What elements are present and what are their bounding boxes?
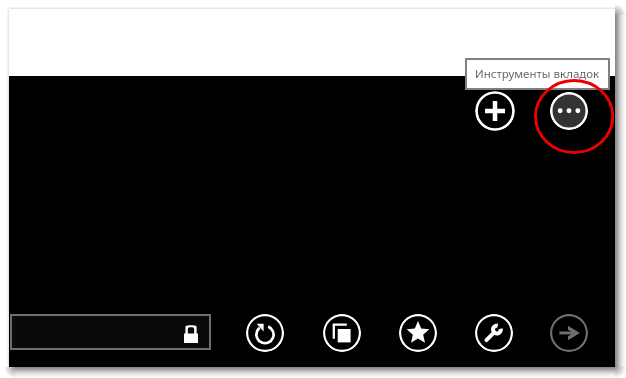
button[interactable]: Tabs <box>323 314 361 352</box>
button[interactable] <box>10 314 211 350</box>
button[interactable]: Go <box>550 314 588 352</box>
button[interactable]: Favorites <box>399 314 437 352</box>
button[interactable]: Refresh <box>246 314 284 352</box>
staticText: Инструменты вкладок <box>475 66 600 82</box>
button[interactable]: Tab tools <box>550 92 588 130</box>
button[interactable]: New tab <box>475 91 515 131</box>
button[interactable]: Tools <box>475 314 513 352</box>
